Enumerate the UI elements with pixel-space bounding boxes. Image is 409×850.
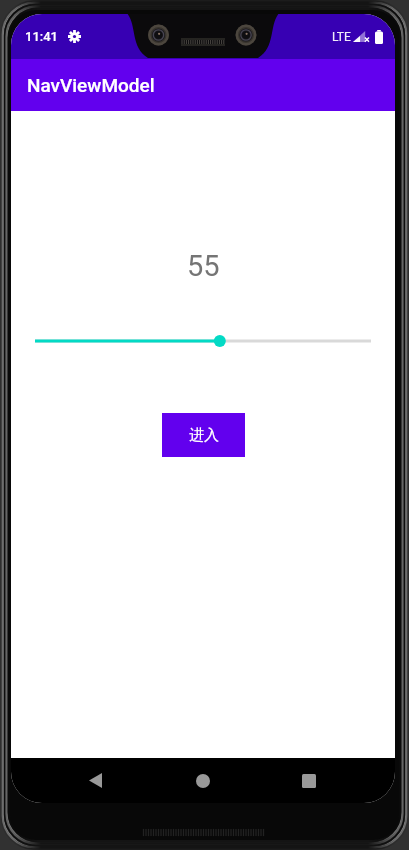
staticText: 11:41: [25, 29, 58, 44]
button[interactable]: 进入: [162, 413, 245, 457]
staticText: 55: [187, 249, 220, 283]
button[interactable]: Home: [163, 758, 243, 803]
button[interactable]: Back: [55, 758, 136, 803]
staticText: LTE: [332, 30, 351, 44]
button[interactable]: [11, 331, 395, 351]
staticText: 进入: [189, 426, 219, 445]
button[interactable]: Recent apps: [269, 758, 349, 803]
staticText: NavViewModel: [27, 74, 155, 96]
